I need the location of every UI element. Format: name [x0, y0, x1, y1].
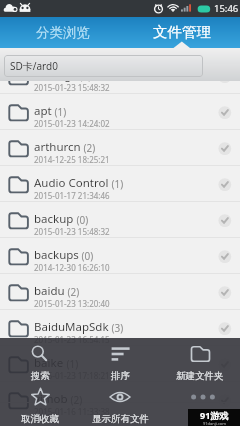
other: Show all files [110, 389, 130, 405]
staticText: 2014-12-25 18:25:21 [34, 154, 110, 165]
staticText: 搜索 [31, 370, 50, 382]
staticText: baike [34, 355, 64, 371]
staticText: (2) [68, 393, 83, 407]
staticText: settings [34, 81, 77, 83]
staticText: (0) [77, 81, 92, 83]
staticText: 2015-01-23 14:24:02 [34, 118, 110, 129]
button[interactable]: yimob [0, 382, 240, 403]
staticText: 2015-01-17 21:34:46 [34, 190, 110, 201]
staticText: 2015-01-23 17:18:21 [34, 370, 110, 381]
button[interactable]: New folder [160, 342, 240, 386]
staticText: 文件管理 [153, 23, 211, 41]
button[interactable]: backups [0, 238, 240, 274]
staticText: (2) [81, 141, 96, 155]
staticText: apt [34, 103, 52, 119]
staticText: BaiduMapSdk [34, 319, 109, 335]
staticText: 2015-01-23 15:48:32 [34, 82, 110, 93]
staticText: 2015-01-23 13:20:40 [34, 298, 110, 309]
staticText: 2014-12-30 16:26:10 [34, 262, 110, 273]
staticText: 新建文件夹 [176, 370, 224, 382]
other: Sort [111, 346, 130, 362]
button[interactable]: SD卡/ard0 [4, 55, 203, 77]
staticText: 2015-01-23 15:48:32 [34, 226, 110, 237]
staticText: (3) [109, 321, 124, 335]
button[interactable]: baike [0, 346, 240, 382]
staticText: 2015-01-16 11:33:38 [34, 406, 110, 417]
button[interactable]: baidu [0, 274, 240, 310]
staticText: SD卡/ard0 [10, 59, 58, 73]
button[interactable]: apt [0, 94, 240, 130]
staticText: Audio Control [34, 175, 109, 191]
staticText: 91danji.com [203, 421, 226, 426]
button[interactable]: settings [0, 81, 240, 94]
button[interactable]: Audio Control [0, 166, 240, 202]
staticText: 显示所有文件 [92, 413, 149, 425]
staticText: (2) [65, 285, 80, 299]
button[interactable]: Sort [80, 342, 160, 386]
button[interactable]: Search [0, 342, 80, 386]
staticText: baidu [34, 283, 65, 299]
staticText: backups [34, 247, 79, 263]
staticText: (0) [74, 213, 89, 227]
button[interactable]: Unfavorite [0, 385, 80, 426]
staticText: 排序 [111, 370, 130, 382]
staticText: arthurcn [34, 139, 81, 155]
staticText: backup [34, 211, 74, 227]
other: Unfavorite [31, 389, 50, 405]
staticText: 2015-01-23 16:54:15 [34, 334, 110, 345]
button[interactable]: 分类浏览 [0, 17, 120, 48]
other: Search [32, 346, 48, 362]
button[interactable]: BaiduMapSdk [0, 310, 240, 346]
staticText: 15:46 [214, 2, 239, 15]
other: New folder [191, 346, 210, 362]
staticText: 分类浏览 [36, 24, 90, 41]
button[interactable]: arthurcn [0, 130, 240, 166]
staticText: 91游戏 [200, 409, 229, 421]
staticText: 取消收藏 [21, 413, 59, 425]
staticText: (1) [109, 177, 124, 191]
button[interactable]: backup [0, 202, 240, 238]
staticText: (0) [79, 249, 94, 263]
staticText: (1) [52, 105, 67, 119]
staticText: yimob [34, 391, 68, 407]
staticText: (1) [64, 357, 79, 371]
button[interactable]: 文件管理 [120, 17, 240, 48]
button[interactable]: Show all files [80, 385, 160, 426]
